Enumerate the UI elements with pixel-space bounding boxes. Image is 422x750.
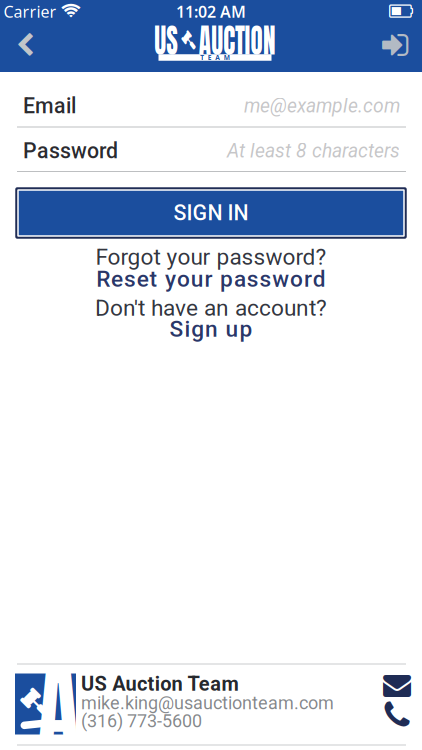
staticText: TEAM bbox=[200, 53, 230, 62]
staticText: US Auction Team bbox=[81, 672, 239, 696]
staticText: mike.king@usauctionteam.com bbox=[81, 692, 334, 714]
button[interactable]: SIGN IN bbox=[15, 187, 407, 239]
staticText:  bbox=[384, 699, 409, 731]
button[interactable]: Back bbox=[3, 23, 47, 67]
staticText: (316) 773-5600 bbox=[81, 710, 202, 732]
staticText: Password bbox=[23, 138, 118, 163]
staticText:  bbox=[383, 671, 411, 699]
staticText: US bbox=[133, 14, 165, 66]
staticText: Reset your password bbox=[96, 266, 326, 292]
staticText: Don't have an account? bbox=[95, 295, 327, 321]
staticText: SIGN IN bbox=[173, 200, 248, 225]
staticText:  bbox=[389, 2, 413, 20]
button[interactable]: Reset your password bbox=[96, 266, 326, 292]
button[interactable]: Sign In bbox=[373, 23, 417, 67]
staticText:  bbox=[61, 2, 81, 20]
staticText: Sign up bbox=[170, 316, 252, 342]
staticText: 11:02 AM bbox=[176, 1, 246, 22]
staticText:  bbox=[16, 32, 34, 58]
staticText:  bbox=[19, 687, 48, 716]
button[interactable]: Sign up bbox=[170, 316, 252, 342]
staticText: At least 8 characters bbox=[227, 140, 400, 162]
button[interactable]: Email US Auction Team bbox=[379, 670, 415, 700]
button[interactable]: Call US Auction Team bbox=[379, 700, 415, 730]
staticText: AUCTION bbox=[193, 14, 297, 66]
staticText: A bbox=[37, 643, 78, 750]
staticText: me@example.com bbox=[244, 95, 400, 117]
staticText:  bbox=[169, 30, 189, 50]
staticText: Forgot your password? bbox=[95, 244, 326, 270]
staticText: Email bbox=[23, 93, 76, 118]
staticText: Carrier bbox=[3, 1, 56, 22]
staticText:  bbox=[382, 30, 408, 60]
